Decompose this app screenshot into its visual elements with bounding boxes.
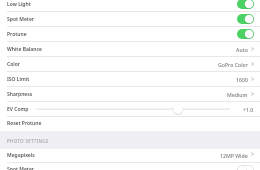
staticText: ISO Limit <box>7 76 30 83</box>
button[interactable]: ISO Limit <box>0 72 260 87</box>
staticText: Spot Meter <box>7 16 34 23</box>
button[interactable]: Turn on <box>237 165 254 170</box>
button[interactable]: Megapixels <box>0 149 260 163</box>
staticText: Sharpness <box>7 91 33 98</box>
staticText: Reset Protune <box>7 120 42 127</box>
button[interactable]: Reset Protune <box>0 117 260 131</box>
button[interactable]: Spot Meter <box>0 163 260 170</box>
button[interactable]: Sharpness <box>0 87 260 102</box>
staticText: 1600 <box>236 76 248 83</box>
staticText: Low Light <box>7 1 31 8</box>
staticText: Color <box>7 61 20 68</box>
button[interactable]: Protune <box>0 27 260 42</box>
button[interactable]: White Balance <box>0 42 260 57</box>
staticText: +1.0 <box>243 106 254 113</box>
staticText: EV Comp <box>7 106 29 113</box>
staticText: 12MP Wide <box>220 152 248 159</box>
button[interactable]: Turn off <box>237 29 254 39</box>
staticText: GoPro Color <box>218 61 248 68</box>
button[interactable]: Spot Meter <box>0 12 260 27</box>
button[interactable]: Turn off <box>237 0 254 9</box>
button[interactable]: Low Light <box>0 0 260 12</box>
staticText: Spot Meter <box>7 166 34 170</box>
staticText: Protune <box>7 31 27 38</box>
button[interactable]: Turn off <box>237 14 254 24</box>
staticText: Auto <box>236 46 248 53</box>
staticText: White Balance <box>7 46 42 53</box>
staticText: Megapixels <box>7 152 35 159</box>
staticText: PHOTO SETTINGS <box>7 138 49 144</box>
staticText: Medium <box>227 91 248 98</box>
button[interactable]: EV Comp <box>0 102 260 117</box>
button[interactable]: Color <box>0 57 260 72</box>
